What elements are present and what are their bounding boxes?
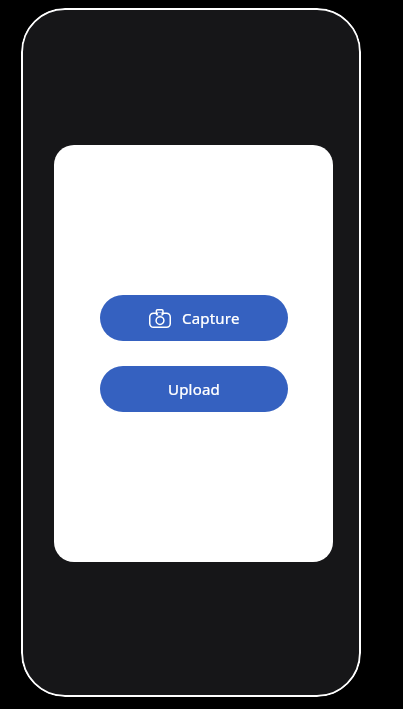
button[interactable]: Capture photo <box>100 295 288 341</box>
button[interactable]: Upload <box>100 366 288 412</box>
staticText: Capture <box>182 308 240 328</box>
staticText: Upload <box>168 379 220 399</box>
other: Capture photo <box>149 309 171 328</box>
